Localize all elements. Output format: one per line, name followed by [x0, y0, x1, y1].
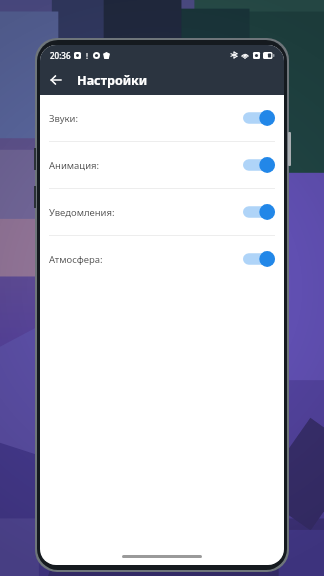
button[interactable]: Атмосфера:	[40, 236, 284, 282]
button[interactable]: Переключатель	[243, 107, 275, 129]
staticText: Звуки:	[49, 112, 243, 125]
button[interactable]: Звуки:	[40, 95, 284, 141]
staticText: Анимация:	[49, 159, 243, 172]
button[interactable]: Анимация:	[40, 142, 284, 188]
button[interactable]: Уведомления:	[40, 189, 284, 235]
staticText: Атмосфера:	[49, 253, 243, 266]
staticText: Настройки	[77, 72, 148, 89]
staticText: Уведомления:	[49, 206, 243, 219]
button[interactable]: Переключатель	[243, 248, 275, 270]
button[interactable]: Переключатель	[243, 201, 275, 223]
staticText: 20:36	[50, 50, 71, 61]
button[interactable]: Назад	[45, 69, 67, 91]
button[interactable]: Переключатель	[243, 154, 275, 176]
